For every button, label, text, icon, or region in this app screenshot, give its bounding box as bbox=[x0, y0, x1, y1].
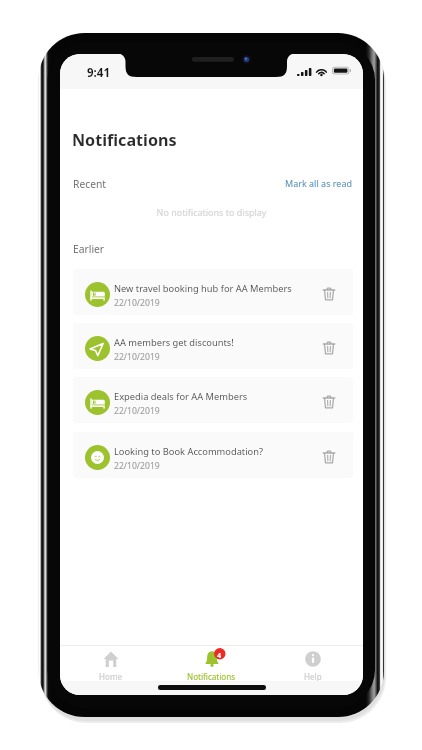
button[interactable]: 4 bbox=[161, 646, 262, 681]
staticText: 22/10/2019 bbox=[114, 351, 160, 363]
staticText: 9:41 bbox=[87, 65, 110, 81]
staticText: 22/10/2019 bbox=[114, 460, 160, 472]
button[interactable]: Looking to Book Accommodation? bbox=[73, 432, 353, 478]
staticText: AA members get discounts! bbox=[114, 336, 234, 349]
button[interactable]: Delete notification bbox=[314, 387, 344, 417]
button[interactable]: Mark all as read bbox=[264, 175, 352, 191]
button[interactable]: Help bbox=[262, 646, 363, 681]
staticText: 4 bbox=[217, 650, 222, 660]
staticText: Mark all as read bbox=[264, 177, 352, 189]
staticText: Looking to Book Accommodation? bbox=[114, 445, 264, 458]
button[interactable]: Home bbox=[60, 646, 161, 681]
button[interactable]: Delete notification bbox=[314, 333, 344, 363]
staticText: No notifications to display bbox=[60, 206, 363, 218]
staticText: Expedia deals for AA Members bbox=[114, 390, 248, 403]
button[interactable]: Delete notification bbox=[314, 279, 344, 309]
button[interactable]: New travel booking hub for AA Members bbox=[73, 269, 353, 315]
button[interactable]: Expedia deals for AA Members bbox=[73, 377, 353, 423]
staticText: Earlier bbox=[73, 242, 105, 256]
staticText: Notifications bbox=[187, 671, 236, 682]
button[interactable]: AA members get discounts! bbox=[73, 323, 353, 369]
staticText: Help bbox=[304, 671, 322, 682]
staticText: 22/10/2019 bbox=[114, 297, 160, 309]
staticText: Notifications bbox=[72, 129, 177, 151]
staticText: 22/10/2019 bbox=[114, 405, 160, 417]
button[interactable]: Delete notification bbox=[314, 442, 344, 472]
staticText: Recent bbox=[73, 177, 107, 191]
staticText: New travel booking hub for AA Members bbox=[114, 282, 292, 295]
staticText: Home bbox=[99, 671, 123, 682]
